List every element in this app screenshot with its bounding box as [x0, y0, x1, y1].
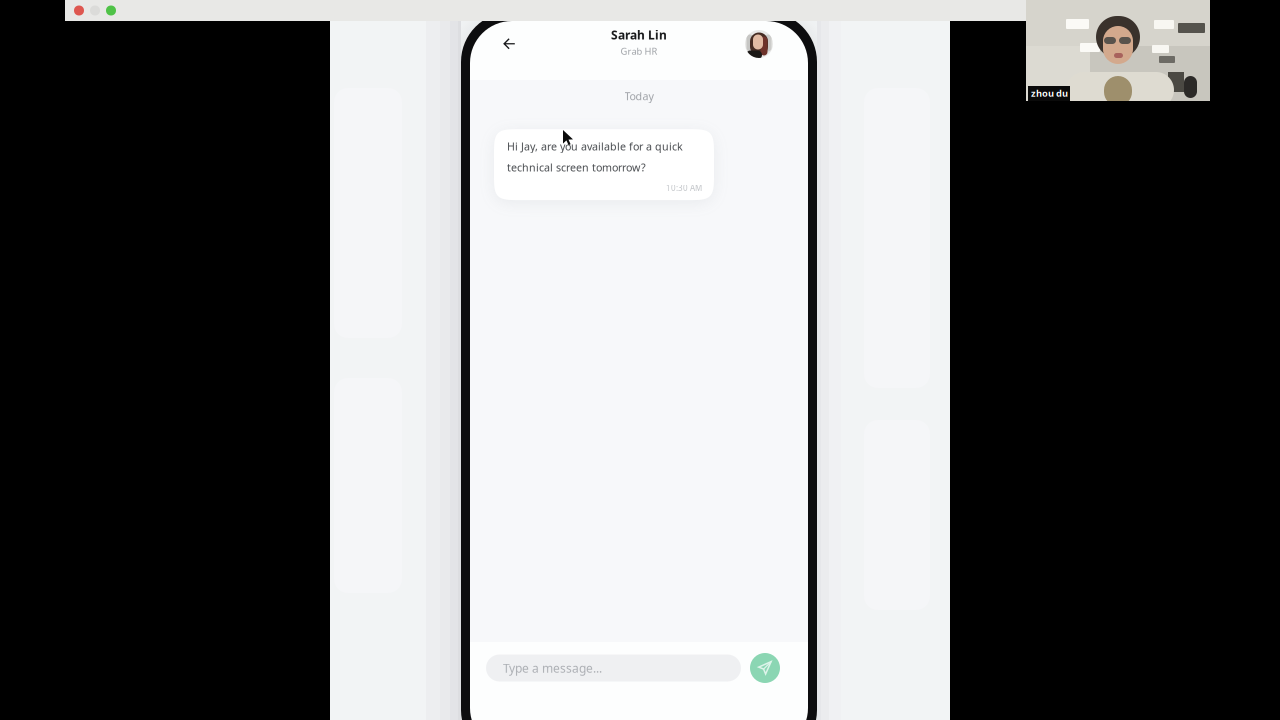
staticText: zhou du	[1031, 87, 1068, 99]
staticText: 10:30 AM	[666, 182, 702, 193]
staticText: Grab HR	[620, 45, 657, 57]
staticText: technical screen tomorrow?	[507, 160, 646, 174]
staticText: Type a message...	[503, 660, 602, 676]
staticText: Today	[624, 89, 653, 103]
button[interactable]: Contact profile	[745, 30, 773, 58]
button[interactable]: Type a message...	[486, 654, 741, 681]
staticText: Sarah Lin	[611, 27, 667, 43]
staticText: Hi Jay, are you available for a quick	[507, 139, 683, 153]
button[interactable]: Send	[750, 653, 780, 683]
button[interactable]: Back	[494, 29, 524, 59]
